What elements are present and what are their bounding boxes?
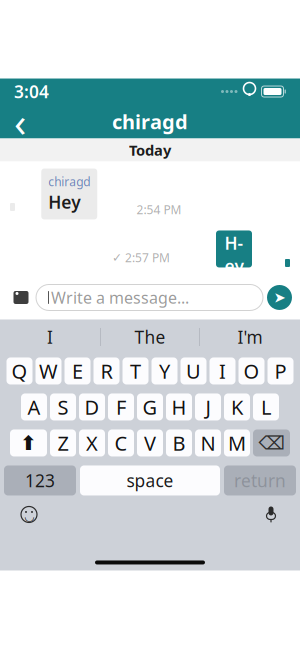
button[interactable]: E bbox=[64, 357, 90, 384]
staticText: N bbox=[200, 430, 215, 456]
staticText: chiragd bbox=[112, 108, 188, 135]
button[interactable]: I'm bbox=[200, 320, 300, 354]
button[interactable]: Write a message... bbox=[36, 284, 263, 310]
staticText: I bbox=[47, 325, 53, 348]
staticText: 2:54 PM bbox=[136, 201, 181, 217]
staticText: Z bbox=[57, 430, 68, 456]
button[interactable]: Back bbox=[0, 104, 40, 138]
staticText: U bbox=[186, 358, 201, 384]
staticText: Q bbox=[11, 358, 27, 384]
button[interactable]: K bbox=[224, 393, 250, 420]
staticText: G bbox=[142, 394, 157, 420]
staticText: H bbox=[171, 394, 186, 420]
staticText: L bbox=[261, 394, 271, 420]
button[interactable]: space bbox=[80, 465, 220, 495]
button[interactable]: I bbox=[0, 320, 100, 354]
staticText: 123 bbox=[25, 469, 55, 492]
button[interactable]: 123 bbox=[4, 465, 76, 495]
staticText: W bbox=[39, 358, 58, 384]
button[interactable]: X bbox=[79, 429, 105, 456]
staticText: P bbox=[274, 358, 286, 384]
button[interactable]: Q bbox=[6, 357, 32, 384]
button[interactable]: I bbox=[209, 357, 235, 384]
button[interactable]: T bbox=[122, 357, 148, 384]
button[interactable]: Delete bbox=[253, 429, 290, 456]
staticText: ➤ bbox=[273, 289, 285, 306]
staticText: X bbox=[86, 430, 98, 456]
button[interactable]: J bbox=[195, 393, 221, 420]
button[interactable]: R bbox=[93, 357, 119, 384]
staticText: return bbox=[234, 469, 286, 492]
staticText: F bbox=[116, 394, 126, 420]
button[interactable]: Send bbox=[263, 281, 296, 314]
button[interactable]: M bbox=[224, 429, 250, 456]
button[interactable]: Emoji bbox=[12, 499, 46, 529]
staticText: ◡ bbox=[24, 509, 34, 523]
button[interactable]: L bbox=[253, 393, 279, 420]
button[interactable]: G bbox=[137, 393, 163, 420]
staticText: C bbox=[114, 430, 127, 456]
staticText: S bbox=[57, 394, 68, 420]
staticText: ⬆ bbox=[20, 432, 37, 454]
staticText: D bbox=[84, 394, 99, 420]
staticText: V bbox=[144, 430, 156, 456]
button[interactable]: H bbox=[166, 393, 192, 420]
staticText: B bbox=[172, 430, 185, 456]
button[interactable]: O bbox=[238, 357, 264, 384]
button[interactable]: U bbox=[180, 357, 206, 384]
staticText: ⌫ bbox=[258, 432, 284, 454]
button[interactable]: The bbox=[101, 320, 199, 354]
button[interactable]: Shift bbox=[10, 429, 47, 456]
staticText: ‹ bbox=[14, 95, 26, 148]
staticText: A bbox=[27, 394, 40, 420]
staticText: O bbox=[243, 358, 259, 384]
staticText: Today bbox=[129, 140, 171, 160]
staticText: Hey bbox=[224, 231, 243, 277]
staticText: M bbox=[228, 430, 246, 456]
staticText: The bbox=[134, 325, 165, 348]
staticText: Hey bbox=[48, 190, 80, 213]
button[interactable]: A bbox=[21, 393, 47, 420]
button[interactable]: B bbox=[166, 429, 192, 456]
button[interactable]: S bbox=[50, 393, 76, 420]
staticText: 2:57 PM bbox=[125, 249, 170, 265]
button[interactable]: W bbox=[35, 357, 61, 384]
staticText: Y bbox=[159, 358, 170, 384]
button[interactable]: N bbox=[195, 429, 221, 456]
staticText: chiragd bbox=[48, 173, 90, 189]
button[interactable]: V bbox=[137, 429, 163, 456]
button[interactable]: D bbox=[79, 393, 105, 420]
staticText: E bbox=[72, 358, 83, 384]
button[interactable]: return bbox=[224, 465, 296, 495]
staticText: ✓ bbox=[112, 251, 122, 264]
button[interactable]: P bbox=[267, 357, 293, 384]
staticText: R bbox=[100, 358, 112, 384]
staticText: I'm bbox=[237, 325, 262, 348]
button[interactable]: Y bbox=[151, 357, 177, 384]
button[interactable]: Z bbox=[50, 429, 76, 456]
staticText: T bbox=[130, 358, 141, 384]
button[interactable]: Attach image bbox=[6, 282, 36, 312]
button[interactable]: Dictate bbox=[254, 499, 288, 529]
staticText: J bbox=[205, 394, 210, 420]
staticText: K bbox=[231, 394, 243, 420]
staticText: space bbox=[126, 469, 173, 492]
button[interactable]: F bbox=[108, 393, 134, 420]
staticText: I bbox=[219, 358, 226, 384]
button[interactable]: C bbox=[108, 429, 134, 456]
staticText: 3:04 bbox=[14, 80, 49, 103]
staticText: Write a message... bbox=[51, 287, 189, 308]
